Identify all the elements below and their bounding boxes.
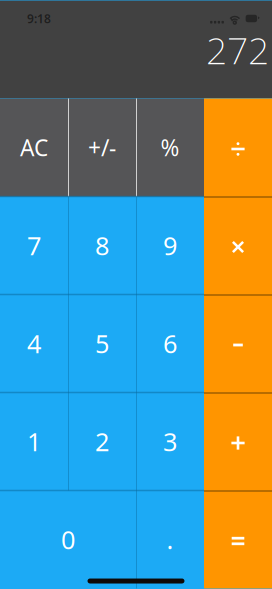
- button[interactable]: 0: [0, 490, 136, 588]
- staticText: %: [160, 132, 179, 162]
- staticText: 2: [95, 425, 109, 458]
- staticText: 0: [61, 523, 75, 556]
- button[interactable]: Divide: [204, 98, 272, 196]
- button[interactable]: 9: [136, 196, 204, 294]
- button[interactable]: 4: [0, 294, 68, 392]
- staticText: 4: [27, 327, 41, 360]
- staticText: 9:18: [27, 10, 51, 26]
- button[interactable]: Percent: [136, 98, 204, 196]
- button[interactable]: Plus: [204, 392, 272, 490]
- staticText: 6: [163, 327, 177, 360]
- button[interactable]: Minus: [204, 294, 272, 392]
- staticText: .: [166, 523, 173, 556]
- button[interactable]: Plus minus: [68, 98, 136, 196]
- button[interactable]: Equals: [204, 490, 272, 588]
- button[interactable]: 5: [68, 294, 136, 392]
- button[interactable]: Decimal point: [136, 490, 204, 588]
- button[interactable]: 8: [68, 196, 136, 294]
- button[interactable]: 6: [136, 294, 204, 392]
- button[interactable]: 1: [0, 392, 68, 490]
- button[interactable]: 7: [0, 196, 68, 294]
- button[interactable]: All clear: [0, 98, 68, 196]
- staticText: AC: [20, 132, 48, 162]
- button[interactable]: 3: [136, 392, 204, 490]
- staticText: +/-: [88, 132, 116, 162]
- staticText: 7: [27, 229, 41, 262]
- staticText: 272: [206, 25, 269, 74]
- staticText: 1: [27, 425, 41, 458]
- staticText: 9: [163, 229, 177, 262]
- staticText: 3: [163, 425, 177, 458]
- button[interactable]: 2: [68, 392, 136, 490]
- staticText: 5: [95, 327, 109, 360]
- button[interactable]: Multiply: [204, 196, 272, 294]
- staticText: 8: [95, 229, 109, 262]
